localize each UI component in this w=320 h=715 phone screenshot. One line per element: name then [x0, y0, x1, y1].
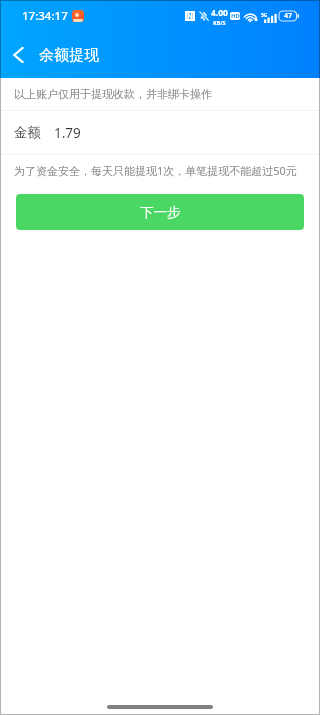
staticText: 17:34:17: [22, 8, 68, 24]
staticText: 1.79: [54, 124, 81, 142]
button[interactable]: 金额: [0, 111, 320, 154]
staticText: KB/S: [213, 19, 226, 26]
staticText: 金额: [14, 124, 41, 141]
button[interactable]: Back: [0, 32, 36, 78]
button[interactable]: 下一步: [16, 194, 304, 230]
staticText: HD: [231, 12, 240, 20]
staticText: 以上账户仅用于提现收款，并非绑卡操作: [14, 87, 212, 101]
staticText: 下一步: [140, 204, 181, 221]
staticText: 47: [284, 11, 293, 21]
staticText: 为了资金安全，每天只能提现1次，单笔提现不能超过50元: [14, 163, 297, 178]
staticText: 余额提现: [39, 46, 99, 65]
staticText: 4.00: [211, 7, 228, 19]
staticText: 5G: [261, 12, 268, 19]
